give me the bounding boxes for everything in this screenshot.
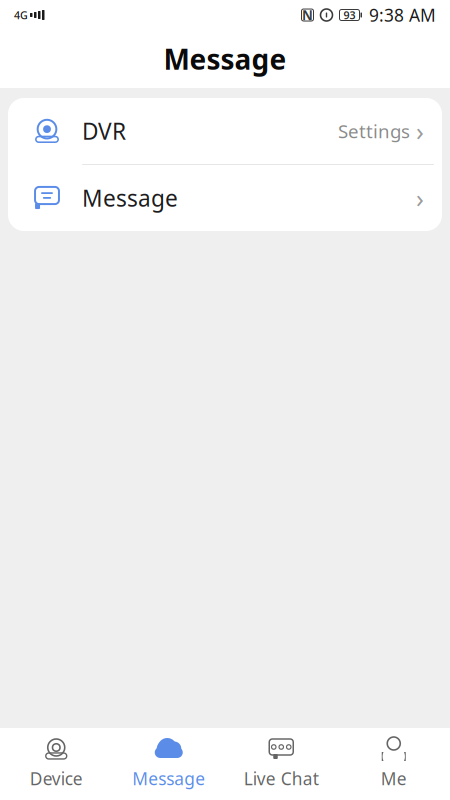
staticText: Live Chat [244, 767, 319, 790]
button[interactable]: DVR [8, 98, 442, 164]
button[interactable]: Message [112, 726, 225, 800]
button[interactable]: Me [337, 726, 450, 800]
staticText: Settings [338, 119, 410, 143]
staticText: › [416, 114, 424, 148]
button[interactable]: Live Chat [225, 726, 337, 800]
staticText: 93 [343, 8, 355, 22]
staticText: › [416, 181, 424, 215]
staticText: Message [163, 40, 286, 78]
staticText: Message [82, 183, 178, 213]
staticText: Me [381, 767, 407, 790]
staticText: N [302, 6, 313, 24]
staticText: DVR [82, 116, 126, 146]
staticText: 9:38 AM [369, 3, 436, 26]
staticText: Message [132, 767, 205, 790]
staticText: Device [30, 767, 83, 790]
button[interactable]: Device [0, 726, 112, 800]
staticText: 4G [14, 8, 28, 22]
button[interactable]: Message [8, 165, 442, 231]
